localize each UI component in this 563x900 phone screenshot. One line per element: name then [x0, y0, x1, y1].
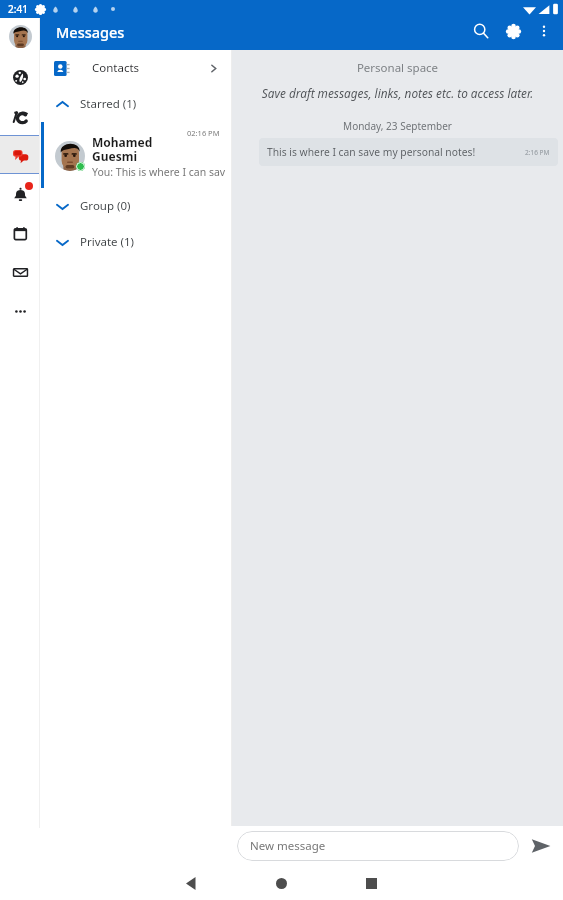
staticText: Messages [56, 22, 125, 42]
button[interactable]: Settings [497, 15, 529, 47]
button[interactable]: Group (0) [40, 188, 231, 224]
staticText: Save draft messages, links, notes etc. t… [232, 85, 563, 101]
staticText: New message [250, 838, 326, 854]
button[interactable]: Mail [0, 252, 40, 291]
staticText: Group (0) [80, 198, 131, 214]
button[interactable]: Notifications [0, 174, 40, 213]
button[interactable]: 02:16 PM [40, 122, 231, 188]
button[interactable]: New message [237, 831, 519, 861]
button[interactable]: Recents [355, 867, 388, 900]
staticText: 2:41 [8, 2, 28, 16]
staticText: Starred (1) [80, 96, 137, 112]
staticText: 2:16 PM [525, 148, 550, 157]
staticText: This is where I can save my personal not… [267, 145, 476, 159]
button[interactable]: Dashboard [0, 57, 40, 96]
button[interactable]: Calendar [0, 213, 40, 252]
staticText: Mohamed Guesmi [92, 134, 184, 165]
button[interactable]: More [0, 291, 40, 330]
button[interactable]: Messages [0, 135, 40, 174]
button[interactable]: More options [529, 16, 559, 46]
button[interactable]: Send [519, 826, 563, 866]
staticText: You: This is where I can sav [92, 165, 226, 179]
staticText: Monday, 23 September [232, 119, 563, 133]
button[interactable]: Profile [0, 18, 40, 54]
staticText: Contacts [92, 60, 140, 76]
button[interactable]: Starred (1) [40, 86, 231, 122]
button[interactable]: Activity [0, 96, 40, 135]
button[interactable]: Private (1) [40, 224, 231, 260]
staticText: Personal space [232, 60, 563, 76]
button[interactable]: Search [465, 15, 497, 47]
button[interactable]: Back [174, 867, 207, 900]
button[interactable]: Home [265, 867, 298, 900]
button[interactable]: Contacts [40, 50, 231, 86]
staticText: Private (1) [80, 234, 135, 250]
staticText: 02:16 PM [187, 128, 220, 138]
